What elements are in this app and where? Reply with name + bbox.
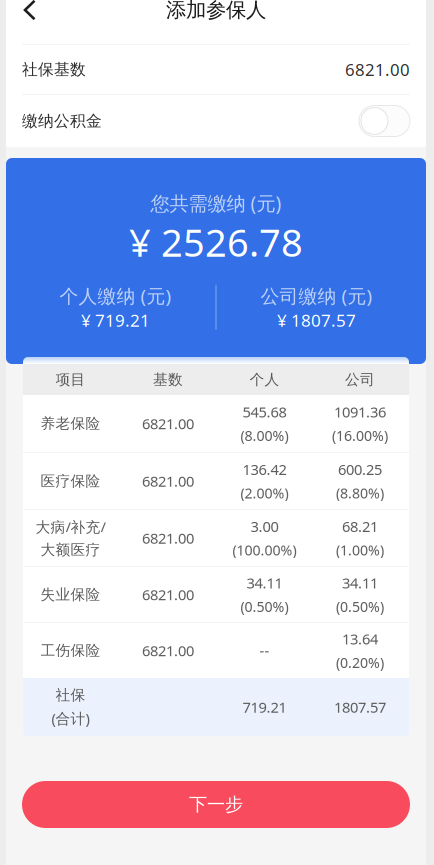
staticText: 下一步	[189, 793, 243, 816]
staticText: 公司	[345, 370, 375, 389]
staticText: 您共需缴纳 (元)	[150, 190, 281, 216]
staticText: 个人缴纳 (元)	[59, 283, 171, 308]
staticText: (100.00%)	[232, 540, 296, 560]
staticText: 600.25	[338, 459, 382, 479]
staticText: 1807.57	[334, 697, 386, 717]
staticText: (2.00%)	[240, 483, 288, 503]
staticText: 失业保险	[40, 585, 100, 604]
staticText: 添加参保人	[166, 0, 266, 23]
staticText: (0.50%)	[336, 597, 384, 616]
staticText: 6821.00	[142, 413, 194, 433]
staticText: 719.21	[242, 697, 286, 717]
staticText: (0.20%)	[336, 653, 384, 672]
staticText: (16.00%)	[332, 426, 388, 445]
staticText: 68.21	[342, 516, 378, 536]
staticText: 基数	[153, 370, 183, 389]
staticText: (合计)	[51, 708, 89, 728]
staticText: (0.50%)	[240, 597, 288, 616]
staticText: --	[259, 640, 269, 660]
staticText: 3.00	[250, 516, 278, 536]
button[interactable]: 返回	[8, 0, 52, 25]
button[interactable]: 下一步	[22, 781, 410, 828]
staticText: 养老保险	[40, 414, 100, 433]
staticText: 缴纳公积金	[22, 111, 102, 131]
staticText: 34.11	[246, 573, 282, 593]
staticText: 34.11	[342, 573, 378, 593]
staticText: (1.00%)	[336, 540, 384, 560]
staticText: 医疗保险	[40, 472, 100, 490]
staticText: ¥ 1807.57	[277, 308, 356, 332]
staticText: 6821.00	[142, 528, 194, 548]
staticText: 6821.00	[142, 471, 194, 491]
button[interactable]: 缴纳公积金	[359, 105, 410, 136]
staticText: 项目	[55, 370, 85, 389]
staticText: 社保	[55, 686, 85, 704]
staticText: 6821.00	[142, 640, 194, 660]
staticText: 6821.00	[345, 58, 410, 81]
staticText: 13.64	[342, 629, 378, 649]
staticText: (8.80%)	[336, 483, 384, 503]
staticText: 1091.36	[334, 402, 386, 422]
staticText: 6821.00	[142, 584, 194, 604]
staticText: 公司缴纳 (元)	[260, 283, 372, 308]
staticText: 社保基数	[22, 60, 86, 79]
staticText: 545.68	[242, 402, 286, 422]
staticText: 136.42	[242, 459, 286, 479]
staticText: 个人	[249, 370, 279, 389]
staticText: 大病/补充/	[35, 517, 105, 537]
staticText: 大额医疗	[40, 541, 100, 559]
staticText: 工伤保险	[40, 641, 100, 660]
button[interactable]: 社保基数	[6, 45, 426, 94]
staticText: (8.00%)	[240, 426, 288, 445]
staticText: ¥ 2526.78	[129, 216, 303, 268]
staticText: ¥ 719.21	[81, 308, 150, 332]
